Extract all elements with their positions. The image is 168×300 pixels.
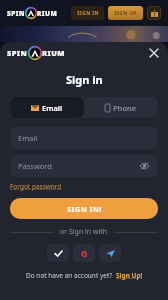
button[interactable]: SIGN UP — [108, 6, 143, 20]
button[interactable]: Email — [10, 127, 158, 149]
button[interactable]: Sign in with WeChat — [47, 244, 69, 262]
staticText: Phone — [113, 103, 137, 113]
staticText: Do not have an account yet? — [26, 271, 113, 280]
button[interactable]: Password — [10, 155, 158, 177]
staticText: Password — [18, 161, 52, 171]
button[interactable]: Gift — [147, 6, 161, 20]
staticText: Email — [42, 103, 63, 113]
staticText: SPIN — [7, 48, 28, 58]
button[interactable]: Phone — [84, 97, 158, 118]
staticText: Email — [18, 133, 38, 143]
button[interactable]: SIGN IN — [71, 6, 104, 20]
staticText: SIGN UP — [114, 10, 137, 17]
staticText: Forgot password — [10, 182, 62, 191]
button[interactable]: Close — [145, 44, 163, 62]
staticText: SIGN IN — [77, 10, 99, 17]
button[interactable]: Email — [10, 97, 84, 118]
button[interactable]: Forgot password — [10, 182, 62, 191]
staticText: or Sign in with — [60, 227, 108, 237]
staticText: G — [81, 247, 88, 259]
staticText: RIUM — [42, 48, 65, 58]
staticText: SIGN IN! — [67, 204, 102, 214]
staticText: RIUM — [37, 9, 58, 18]
button[interactable]: Sign in with Telegram — [99, 244, 121, 262]
button[interactable]: Sign Up! — [116, 271, 143, 280]
staticText: Sign Up! — [116, 271, 143, 280]
button[interactable]: Show password — [138, 160, 150, 172]
staticText: Sign in — [66, 72, 103, 87]
button[interactable]: Sign in with Google — [73, 244, 95, 262]
staticText: SPIN — [7, 9, 25, 18]
button[interactable]: SIGN IN! — [10, 198, 158, 219]
